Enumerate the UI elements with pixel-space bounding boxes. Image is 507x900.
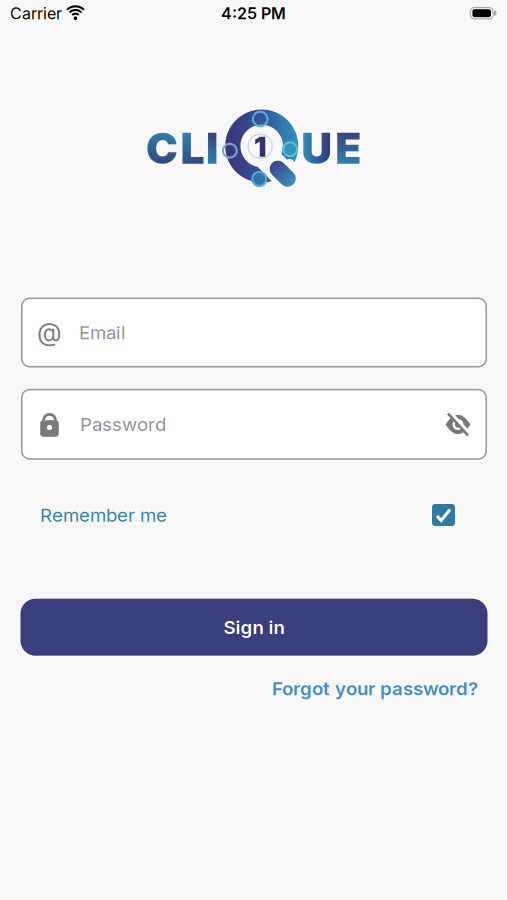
staticText: E [335, 123, 361, 173]
staticText: I [206, 123, 218, 173]
staticText: Carrier [10, 4, 62, 23]
staticText: Remember me [40, 504, 167, 526]
button[interactable]: Password [21, 389, 487, 460]
staticText: Forgot your password? [272, 677, 478, 699]
button[interactable]: Forgot your password? [272, 677, 478, 699]
staticText: Email [79, 321, 126, 343]
staticText: L [180, 123, 204, 173]
staticText: Password [80, 413, 166, 435]
staticText: 4:25 PM [221, 4, 286, 23]
button[interactable]: Sign in [20, 599, 487, 656]
button[interactable]: Email [21, 297, 487, 367]
staticText: 1 [254, 130, 266, 163]
staticText: C [146, 123, 178, 173]
staticText: @ [37, 317, 62, 347]
staticText: U [301, 123, 332, 173]
button[interactable]: Remember me [40, 504, 455, 526]
staticText: Sign in [223, 616, 284, 638]
button[interactable]: Show password [443, 409, 473, 439]
